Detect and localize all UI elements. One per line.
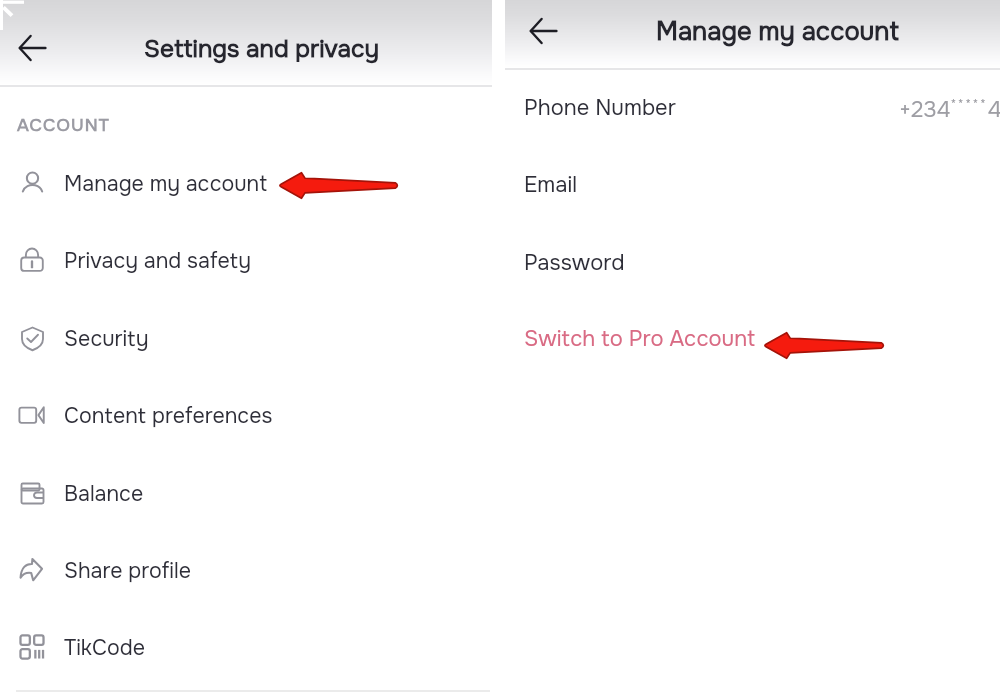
staticText: Password (524, 249, 625, 277)
button[interactable]: Back (521, 9, 565, 53)
button[interactable]: Back (10, 26, 54, 70)
button[interactable]: Content preferences (0, 387, 492, 443)
button[interactable]: Balance (0, 465, 492, 521)
staticText: TikCode (64, 634, 145, 661)
button[interactable]: TikCode (0, 619, 492, 675)
button[interactable]: Phone Number (505, 80, 1000, 136)
button[interactable]: Password (505, 235, 1000, 291)
button[interactable]: Switch to Pro Account (505, 311, 1000, 367)
button[interactable]: Security (0, 310, 492, 366)
staticText: Privacy and safety (64, 247, 251, 274)
staticText: Content preferences (64, 402, 273, 429)
staticText: ACCOUNT (17, 114, 110, 136)
staticText: Manage my account (64, 170, 268, 197)
button[interactable]: Privacy and safety (0, 232, 492, 288)
staticText: +234*****4 (899, 96, 1000, 124)
button[interactable]: Manage my account (0, 155, 492, 211)
staticText: Settings and privacy (144, 33, 380, 64)
staticText: Share profile (64, 557, 191, 584)
button[interactable]: Share profile (0, 542, 492, 598)
staticText: Manage my account (656, 15, 899, 48)
staticText: Switch to Pro Account (524, 325, 756, 353)
staticText: Security (64, 325, 149, 352)
staticText: Phone Number (524, 94, 676, 122)
staticText: Balance (64, 480, 144, 507)
staticText: Email (524, 171, 578, 199)
button[interactable]: Email (505, 157, 1000, 213)
